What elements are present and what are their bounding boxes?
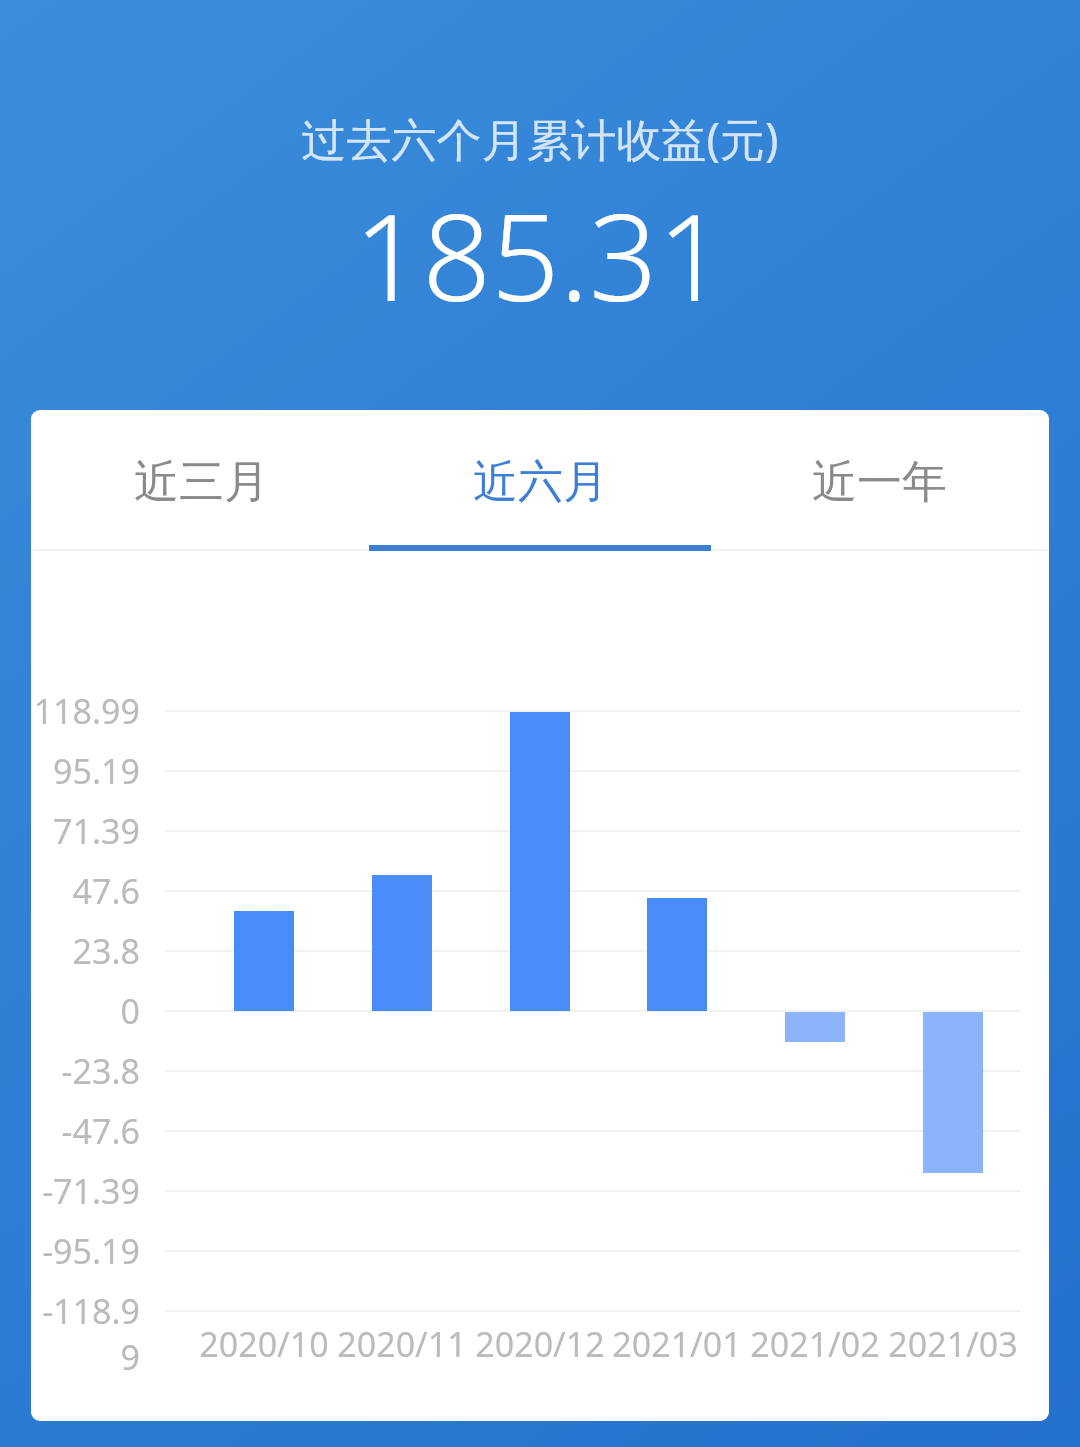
staticText: 0 xyxy=(120,988,140,1034)
staticText: 118.99 xyxy=(33,688,140,734)
staticText: 23.8 xyxy=(72,928,140,974)
staticText: 过去六个月累计收益(元) xyxy=(301,108,779,169)
staticText: 近三月 xyxy=(134,454,269,511)
staticText: 2021/02 xyxy=(750,1321,880,1367)
staticText: 47.6 xyxy=(72,868,140,914)
button[interactable]: 近一年 xyxy=(710,410,1049,551)
staticText: 185.31 xyxy=(354,173,726,336)
staticText: -23.8 xyxy=(61,1048,140,1094)
button[interactable]: 近六月 xyxy=(371,410,710,551)
staticText: 2021/01 xyxy=(612,1321,742,1367)
staticText: 近一年 xyxy=(812,454,947,511)
staticText: -118.99 xyxy=(31,1288,140,1380)
staticText: -95.19 xyxy=(42,1228,140,1274)
staticText: 2020/10 xyxy=(199,1321,329,1367)
staticText: -47.6 xyxy=(61,1108,140,1154)
staticText: 近六月 xyxy=(473,454,608,511)
button[interactable]: 近三月 xyxy=(31,410,371,551)
staticText: 95.19 xyxy=(53,748,140,794)
staticText: 2020/11 xyxy=(337,1321,467,1367)
staticText: -71.39 xyxy=(42,1168,140,1214)
staticText: 2020/12 xyxy=(475,1321,605,1367)
staticText: 71.39 xyxy=(53,808,140,854)
staticText: 2021/03 xyxy=(888,1321,1018,1367)
